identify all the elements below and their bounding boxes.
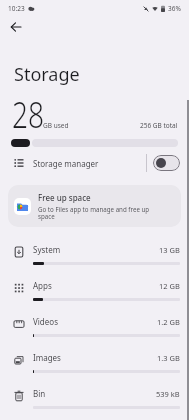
button[interactable]: Apps: [0, 271, 189, 307]
staticText: 539 kB: [156, 389, 180, 399]
staticText: 1.3 GB: [157, 353, 180, 363]
staticText: 12 GB: [159, 281, 180, 291]
button[interactable]: Storage manager: [0, 150, 189, 176]
staticText: 256 GB total: [140, 121, 178, 130]
staticText: Free up space: [38, 192, 91, 203]
staticText: 13 GB: [159, 245, 180, 255]
staticText: Go to Files app to manage and free up sp…: [38, 205, 150, 221]
staticText: Bin: [33, 388, 46, 399]
button[interactable]: Videos: [0, 307, 189, 343]
button[interactable]: [9, 20, 23, 34]
staticText: 10:23: [8, 4, 25, 13]
staticText: 36%: [168, 4, 181, 13]
staticText: System: [33, 244, 61, 255]
button[interactable]: System: [0, 235, 189, 271]
staticText: Storage manager: [33, 158, 99, 169]
staticText: GB used: [43, 121, 69, 130]
staticText: 28: [12, 90, 45, 139]
button[interactable]: Images: [0, 343, 189, 379]
staticText: Apps: [33, 280, 52, 291]
staticText: Videos: [33, 316, 58, 327]
button[interactable]: Bin: [0, 379, 189, 415]
staticText: Storage: [14, 62, 80, 87]
button[interactable]: Free up space: [8, 185, 181, 227]
staticText: 1.2 GB: [157, 317, 180, 327]
button[interactable]: [153, 155, 180, 171]
staticText: Images: [33, 352, 61, 363]
